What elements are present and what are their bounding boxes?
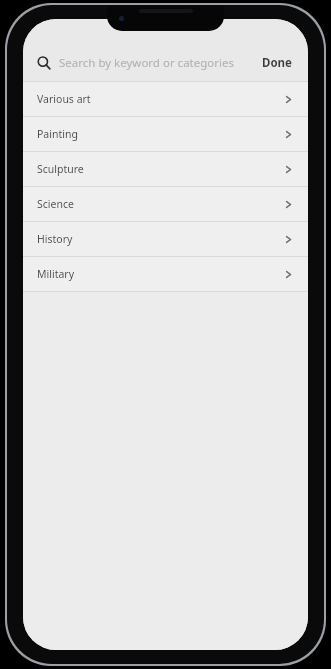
staticText: Various art bbox=[37, 92, 283, 106]
button[interactable]: Done bbox=[258, 51, 296, 75]
button[interactable]: Military bbox=[23, 257, 308, 291]
button[interactable]: Sculpture bbox=[23, 152, 308, 186]
staticText: Search by keyword or categories bbox=[59, 55, 234, 71]
other: Search bbox=[37, 56, 51, 70]
button[interactable]: History bbox=[23, 222, 308, 256]
staticText: History bbox=[37, 232, 283, 246]
button[interactable]: Search bbox=[37, 55, 258, 71]
staticText: Sculpture bbox=[37, 162, 283, 176]
staticText: Military bbox=[37, 267, 283, 281]
staticText: Science bbox=[37, 197, 283, 211]
button[interactable]: Painting bbox=[23, 117, 308, 151]
staticText: Done bbox=[262, 55, 292, 71]
button[interactable]: Science bbox=[23, 187, 308, 221]
staticText: Painting bbox=[37, 127, 283, 141]
button[interactable]: Various art bbox=[23, 82, 308, 116]
